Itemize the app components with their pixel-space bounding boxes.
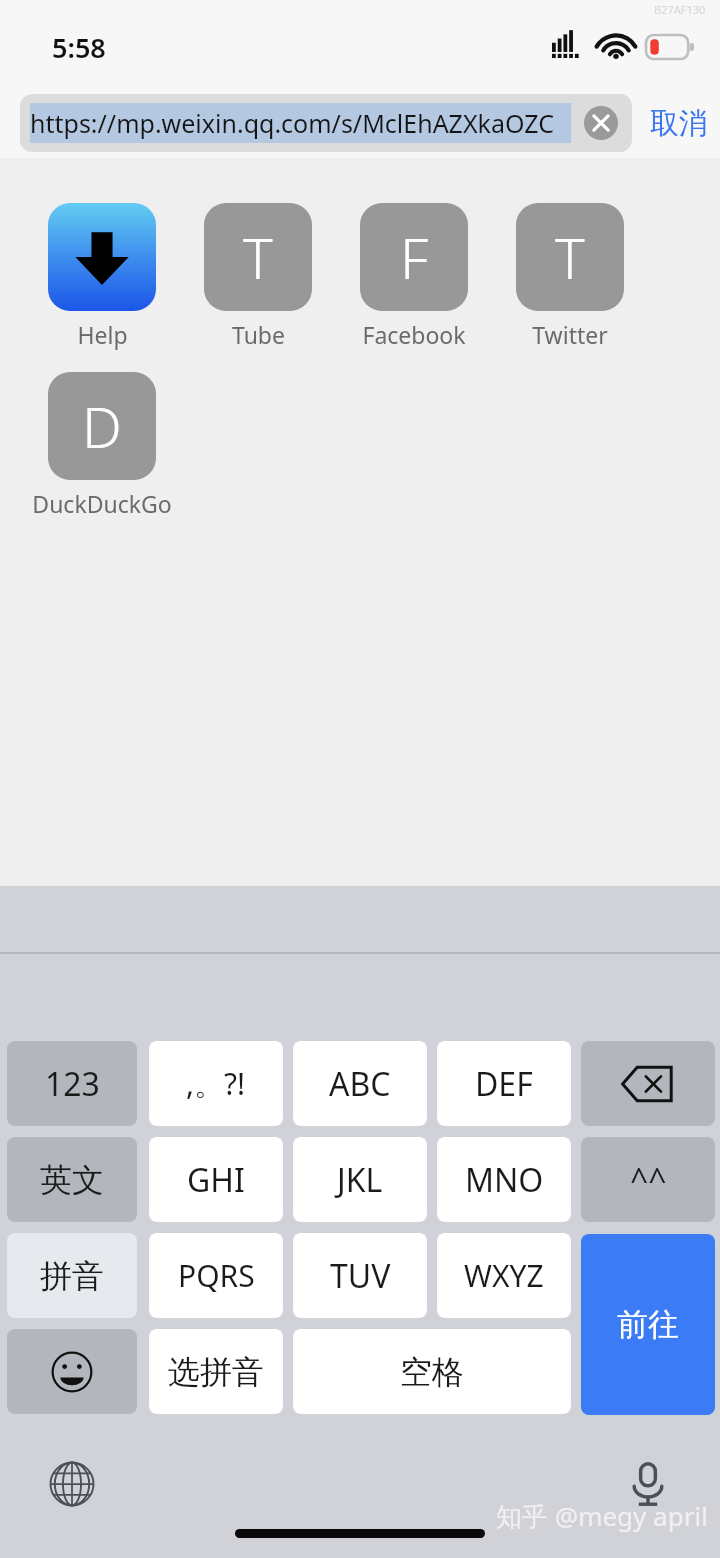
button[interactable]: Emoji — [7, 1329, 137, 1414]
button[interactable]: 选拼音 — [149, 1329, 283, 1414]
button[interactable]: TUV — [293, 1233, 427, 1318]
button[interactable]: Clear text — [584, 106, 618, 140]
staticText: 123 — [45, 1062, 100, 1106]
staticText: ,。?! — [186, 1063, 246, 1104]
staticText: DEF — [475, 1062, 533, 1106]
button[interactable]: ^^ — [581, 1137, 715, 1222]
staticText: Twitter — [532, 319, 608, 350]
staticText: GHI — [187, 1158, 245, 1202]
button[interactable]: PQRS — [149, 1233, 283, 1318]
staticText: 5:58 — [52, 29, 106, 66]
button[interactable]: Help — [24, 203, 180, 350]
button[interactable]: MNO — [437, 1137, 571, 1222]
staticText: F — [400, 219, 429, 295]
staticText: T — [555, 219, 585, 295]
button[interactable]: 取消 — [638, 94, 720, 152]
button[interactable]: Switch keyboard — [44, 1456, 100, 1512]
staticText: https://mp.weixin.qq.com/s/MclEhAZXkaOZC — [30, 106, 555, 140]
button[interactable]: Voice input — [620, 1456, 676, 1512]
staticText: 拼音 — [40, 1256, 104, 1296]
staticText: JKL — [337, 1158, 383, 1202]
staticText: MNO — [465, 1158, 544, 1202]
staticText: DuckDuckGo — [32, 488, 172, 519]
button[interactable]: F — [336, 203, 492, 350]
staticText: PQRS — [178, 1255, 255, 1296]
staticText: TUV — [330, 1254, 391, 1298]
button[interactable]: DEF — [437, 1041, 571, 1126]
staticText: 知乎 @megy april — [496, 1498, 708, 1534]
button[interactable]: GHI — [149, 1137, 283, 1222]
button[interactable]: 空格 — [293, 1329, 571, 1414]
button[interactable]: D — [24, 372, 180, 519]
staticText: 空格 — [400, 1352, 464, 1392]
button[interactable]: 拼音 — [7, 1233, 137, 1318]
staticText: D — [82, 388, 122, 464]
staticText: Facebook — [362, 319, 466, 350]
staticText: ^^ — [630, 1158, 667, 1202]
button[interactable]: 前往 — [581, 1234, 715, 1415]
button[interactable]: 英文 — [7, 1137, 137, 1222]
staticText: 取消 — [650, 105, 708, 142]
staticText: ABC — [329, 1062, 391, 1106]
staticText: 选拼音 — [168, 1352, 264, 1392]
staticText: 英文 — [40, 1160, 104, 1200]
button[interactable]: Backspace — [581, 1041, 715, 1126]
staticText: T — [243, 219, 273, 295]
button[interactable]: T — [180, 203, 336, 350]
button[interactable]: WXYZ — [437, 1233, 571, 1318]
button[interactable]: ,。?! — [149, 1041, 283, 1126]
button[interactable]: https://mp.weixin.qq.com/s/MclEhAZXkaOZC — [20, 94, 632, 152]
staticText: Help — [77, 319, 128, 350]
button[interactable]: ABC — [293, 1041, 427, 1126]
button[interactable]: JKL — [293, 1137, 427, 1222]
button[interactable]: T — [492, 203, 648, 350]
staticText: B27AF130 — [654, 2, 706, 17]
staticText: 前往 — [617, 1305, 679, 1344]
button[interactable]: 123 — [7, 1041, 137, 1126]
staticText: WXYZ — [464, 1255, 544, 1296]
staticText: Tube — [232, 319, 285, 350]
